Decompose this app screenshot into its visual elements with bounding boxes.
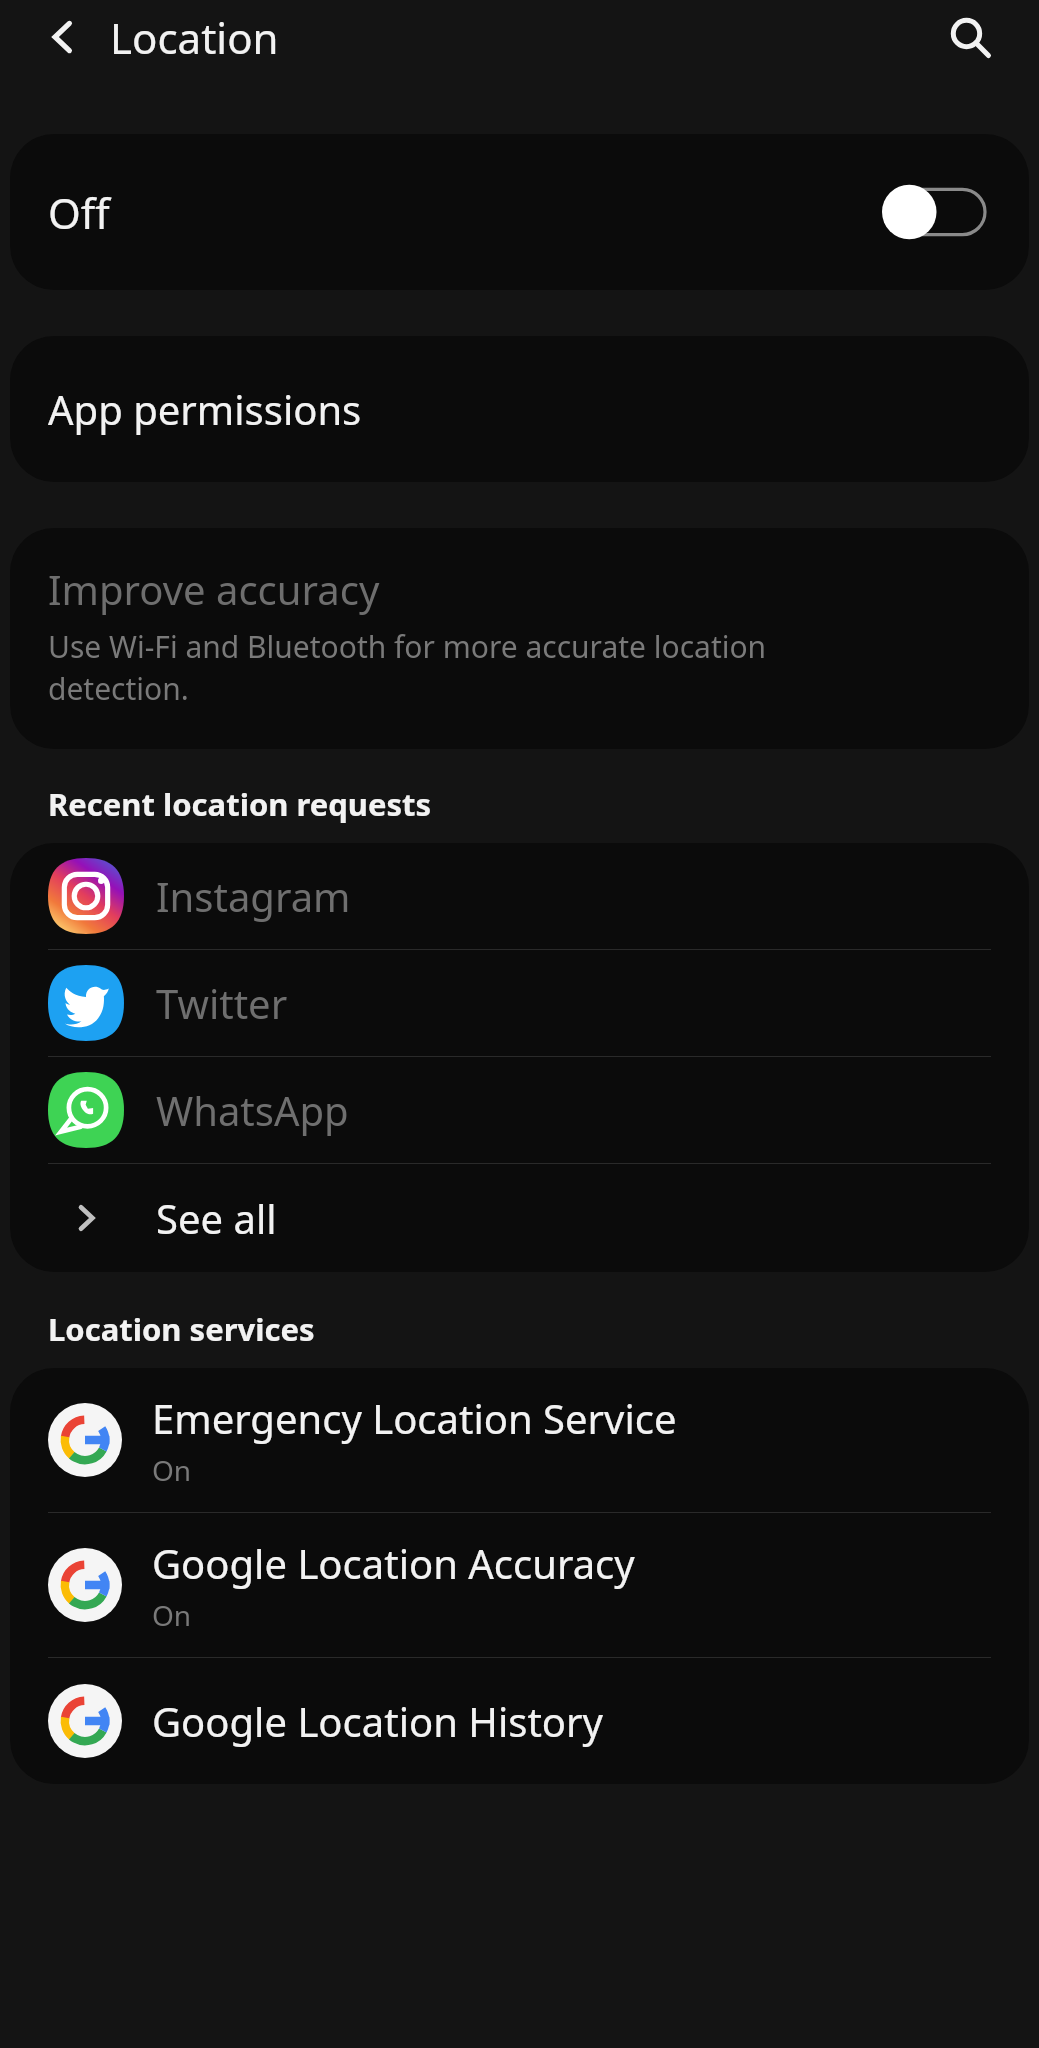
staticText: See all	[156, 1191, 277, 1245]
button[interactable]: Instagram	[10, 843, 1029, 949]
button[interactable]: Emergency Location Service	[10, 1368, 1029, 1512]
staticText: Instagram	[156, 869, 351, 923]
button[interactable]: Twitter	[10, 950, 1029, 1056]
button[interactable]: See all	[10, 1164, 1029, 1272]
button[interactable]: Location toggle, off	[881, 183, 985, 241]
staticText: Twitter	[156, 976, 288, 1030]
staticText: On	[152, 1596, 192, 1634]
button[interactable]: Improve accuracy	[10, 528, 1029, 749]
staticText: Recent location requests	[48, 783, 432, 825]
button[interactable]: WhatsApp	[10, 1057, 1029, 1163]
button[interactable]: Google Location History	[10, 1658, 1029, 1784]
staticText: Location services	[48, 1308, 315, 1350]
button[interactable]: Back	[30, 4, 96, 70]
button[interactable]: App permissions	[10, 336, 1029, 482]
staticText: Location	[110, 9, 279, 66]
button[interactable]: Search	[933, 0, 1007, 74]
staticText: Improve accuracy	[48, 562, 380, 616]
staticText: App permissions	[48, 382, 362, 436]
staticText: Emergency Location Service	[152, 1391, 677, 1445]
button[interactable]: Off	[10, 134, 1029, 290]
staticText: Use Wi-Fi and Bluetooth for more accurat…	[48, 626, 767, 709]
button[interactable]: Google Location Accuracy	[10, 1513, 1029, 1657]
staticText: On	[152, 1451, 192, 1489]
staticText: Google Location Accuracy	[152, 1536, 635, 1590]
staticText: Off	[48, 184, 110, 241]
staticText: Google Location History	[152, 1694, 603, 1748]
staticText: WhatsApp	[156, 1083, 349, 1137]
